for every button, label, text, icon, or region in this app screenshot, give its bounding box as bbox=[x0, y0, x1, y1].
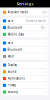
button[interactable]: Notifications bbox=[1, 75, 49, 82]
button[interactable]: Mobile data bbox=[1, 31, 49, 38]
button[interactable]: Security bbox=[1, 89, 49, 95]
button[interactable]: Sound bbox=[1, 69, 49, 75]
staticText: Bluetooth bbox=[8, 48, 23, 51]
button[interactable]: Bluetooth bbox=[1, 46, 49, 53]
staticText: Wi-Fi bbox=[8, 41, 14, 45]
staticText: Privacy bbox=[8, 83, 16, 87]
staticText: Display bbox=[8, 63, 17, 67]
staticText: Airplane mode bbox=[8, 10, 29, 14]
staticText: More bbox=[8, 55, 15, 58]
button[interactable]: Wi-Fi bbox=[1, 18, 49, 24]
staticText: Security bbox=[8, 90, 18, 94]
staticText: Notifications bbox=[8, 77, 25, 80]
button[interactable]: Display bbox=[1, 62, 49, 68]
staticText: Bluetooth bbox=[8, 26, 23, 29]
staticText: On bbox=[41, 26, 45, 29]
staticText: Settings bbox=[16, 1, 33, 6]
staticText: Mobile data bbox=[8, 33, 24, 36]
button[interactable]: Wi-Fi bbox=[1, 40, 49, 46]
button[interactable]: Bluetooth bbox=[1, 24, 49, 31]
button[interactable]: Airplane mode bbox=[1, 9, 49, 15]
staticText: Wi-Fi bbox=[8, 19, 14, 23]
button[interactable]: Privacy bbox=[1, 82, 49, 88]
staticText: Sound bbox=[8, 70, 17, 73]
button[interactable]: More bbox=[1, 53, 49, 60]
staticText: Homenetwork bbox=[26, 19, 45, 23]
